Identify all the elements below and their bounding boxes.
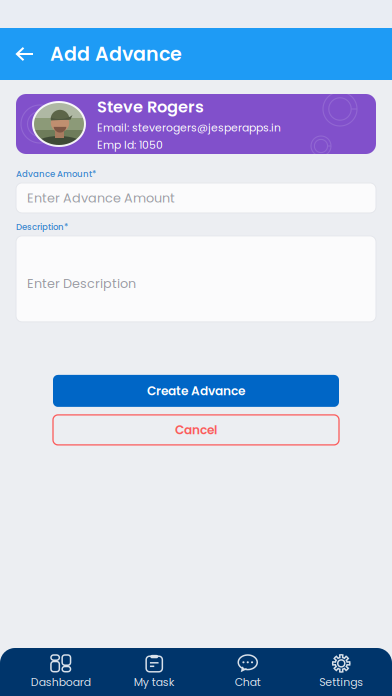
staticText: Cancel (175, 421, 217, 438)
staticText: Email: steverogers@jesperapps.in (97, 120, 281, 135)
staticText: Description* (16, 221, 68, 233)
button[interactable]: Back (0, 28, 50, 80)
staticText: Dashboard (31, 674, 91, 690)
button[interactable]: My task (107, 648, 201, 696)
staticText: Enter Advance Amount (27, 189, 175, 207)
button[interactable]: Settings (294, 648, 388, 696)
staticText: Chat (235, 674, 261, 690)
staticText: Create Advance (147, 382, 245, 399)
staticText: My task (134, 674, 175, 690)
staticText: Settings (319, 674, 363, 690)
button[interactable]: Create Advance (53, 375, 339, 407)
button[interactable]: Dashboard (14, 648, 107, 696)
button[interactable]: Chat (201, 648, 294, 696)
staticText: Steve Rogers (97, 95, 204, 118)
staticText: Emp Id: 1050 (97, 137, 163, 152)
staticText: Enter Description (27, 274, 136, 292)
staticText: Add Advance (50, 41, 182, 67)
staticText: Advance Amount* (16, 168, 96, 180)
button[interactable]: Cancel (53, 415, 339, 445)
